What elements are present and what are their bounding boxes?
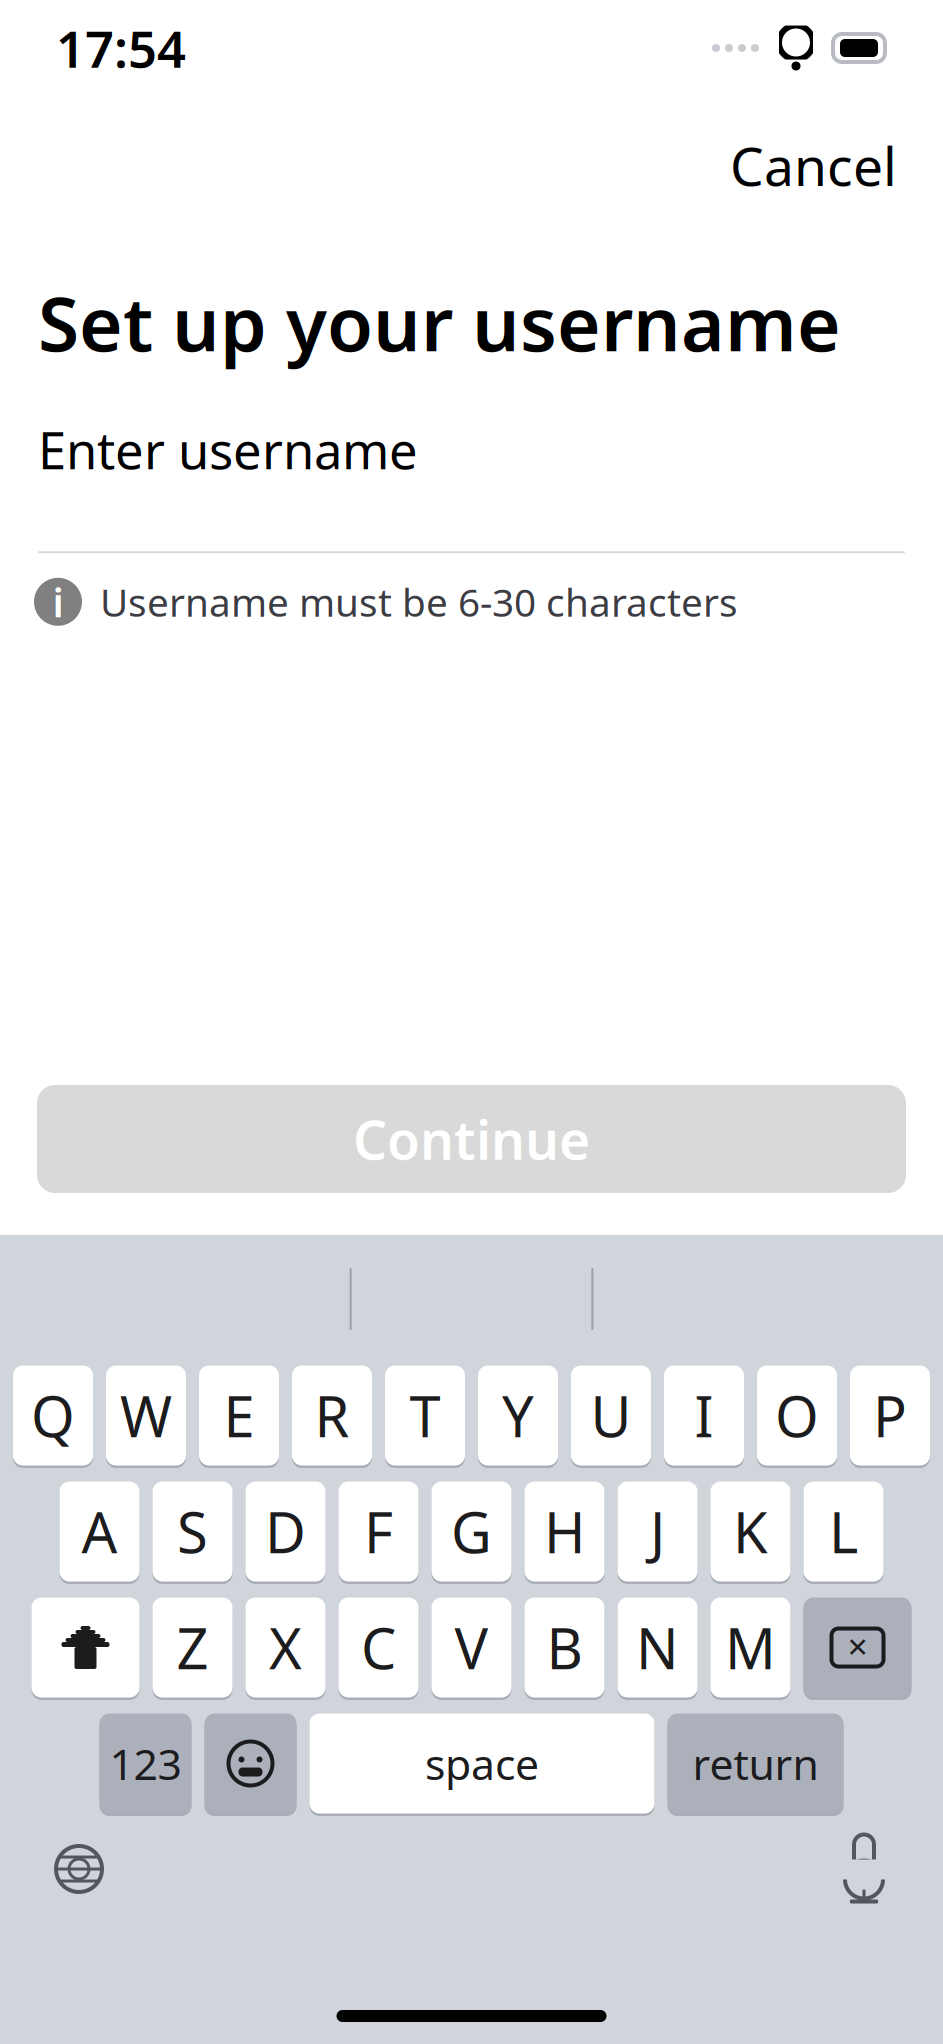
staticText: X xyxy=(269,1610,302,1685)
button[interactable]: J xyxy=(617,1479,697,1584)
staticText: space xyxy=(425,1735,539,1792)
staticText: Cancel xyxy=(730,130,897,201)
button[interactable]: B xyxy=(524,1595,604,1700)
staticText: M xyxy=(725,1610,776,1685)
button[interactable]: Shift xyxy=(31,1595,139,1700)
staticText: H xyxy=(544,1494,585,1569)
button[interactable]: Emoji xyxy=(204,1711,296,1816)
button[interactable]: 123 xyxy=(99,1711,191,1816)
button[interactable]: W xyxy=(106,1363,186,1468)
staticText: D xyxy=(265,1494,306,1569)
staticText: i xyxy=(52,575,63,628)
button[interactable]: X xyxy=(245,1595,325,1700)
staticText: K xyxy=(733,1494,768,1569)
button[interactable]: P xyxy=(850,1363,930,1468)
button[interactable]: Next keyboard xyxy=(34,1824,124,1914)
button[interactable]: V xyxy=(431,1595,511,1700)
staticText: V xyxy=(454,1610,488,1685)
staticText: G xyxy=(451,1494,492,1569)
staticText: F xyxy=(364,1494,393,1569)
staticText: E xyxy=(223,1378,254,1453)
button[interactable]: O xyxy=(757,1363,837,1468)
button[interactable]: H xyxy=(524,1479,604,1584)
button[interactable]: L xyxy=(803,1479,883,1584)
button[interactable]: R xyxy=(292,1363,372,1468)
staticText: I xyxy=(694,1378,713,1453)
button[interactable]: T xyxy=(385,1363,465,1468)
button[interactable]: Z xyxy=(152,1595,232,1700)
staticText: O xyxy=(775,1378,819,1453)
button[interactable]: A xyxy=(59,1479,139,1584)
staticText: Y xyxy=(502,1378,534,1453)
button[interactable]: Y xyxy=(478,1363,558,1468)
button[interactable]: Q xyxy=(13,1363,93,1468)
staticText: Q xyxy=(31,1378,75,1453)
button[interactable]: S xyxy=(152,1479,232,1584)
button[interactable]: E xyxy=(199,1363,279,1468)
staticText: Set up your username xyxy=(38,273,841,372)
staticText: W xyxy=(120,1378,172,1453)
staticText: S xyxy=(177,1494,208,1569)
staticText: Z xyxy=(176,1610,208,1685)
staticText: Enter username xyxy=(38,416,418,483)
button[interactable]: Dictate xyxy=(819,1824,909,1914)
button[interactable]: C xyxy=(338,1595,418,1700)
button[interactable]: G xyxy=(431,1479,511,1584)
staticText: Username must be 6-30 characters xyxy=(100,576,738,627)
button[interactable]: F xyxy=(338,1479,418,1584)
button[interactable]: K xyxy=(710,1479,790,1584)
staticText: L xyxy=(829,1494,858,1569)
button[interactable]: Delete xyxy=(803,1595,911,1700)
staticText: J xyxy=(650,1494,665,1569)
staticText: T xyxy=(409,1378,440,1453)
staticText: U xyxy=(590,1378,631,1453)
button[interactable]: return xyxy=(667,1711,843,1816)
staticText: 17:54 xyxy=(56,14,186,82)
button[interactable]: D xyxy=(245,1479,325,1584)
staticText: B xyxy=(546,1610,582,1685)
staticText: A xyxy=(81,1494,117,1569)
staticText: C xyxy=(361,1610,396,1685)
staticText: Continue xyxy=(353,1104,590,1174)
button[interactable]: N xyxy=(617,1595,697,1700)
button[interactable]: I xyxy=(664,1363,744,1468)
button[interactable]: Cancel xyxy=(712,118,915,213)
staticText: ✕ xyxy=(846,1632,868,1663)
staticText: 123 xyxy=(109,1735,181,1792)
button[interactable]: space xyxy=(309,1711,654,1816)
button[interactable]: U xyxy=(571,1363,651,1468)
staticText: N xyxy=(636,1610,679,1685)
button[interactable]: Continue xyxy=(37,1085,906,1193)
button[interactable]: M xyxy=(710,1595,790,1700)
staticText: return xyxy=(692,1735,818,1792)
staticText: R xyxy=(314,1378,349,1453)
staticText: P xyxy=(873,1378,907,1453)
